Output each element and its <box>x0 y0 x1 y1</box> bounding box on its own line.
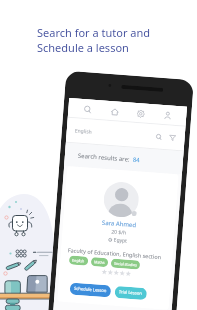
staticText: Faculty of Education, English section <box>68 246 162 260</box>
staticText: Search results are: <box>78 152 130 164</box>
button[interactable]: Social studies <box>111 258 140 270</box>
button[interactable]: Schedule Lesson <box>69 282 111 297</box>
button[interactable]: Home <box>107 104 122 119</box>
button[interactable]: Settings <box>133 106 148 121</box>
button[interactable]: Search <box>155 133 163 141</box>
staticText: English <box>72 258 85 264</box>
staticText: Schedule Lesson <box>74 286 107 294</box>
staticText: English <box>74 127 93 136</box>
staticText: Social studies <box>114 261 137 267</box>
button[interactable]: Search <box>80 102 95 117</box>
button[interactable]: Trial Lesson <box>114 286 147 300</box>
staticText: Sara Ahmed <box>102 219 137 229</box>
button[interactable]: Filter <box>168 133 177 142</box>
button[interactable]: Maths <box>91 257 108 267</box>
button[interactable]: English <box>69 255 88 266</box>
staticText: Maths <box>94 259 105 265</box>
staticText: Trial Lesson <box>119 289 143 297</box>
staticText: Egypt <box>113 237 128 245</box>
staticText: Search for a tutor and <box>37 25 151 40</box>
button[interactable]: Profile <box>160 108 175 123</box>
staticText: 20 $/h <box>111 228 127 236</box>
staticText: Schedule a lesson <box>37 40 129 55</box>
staticText: 84 <box>132 156 140 164</box>
